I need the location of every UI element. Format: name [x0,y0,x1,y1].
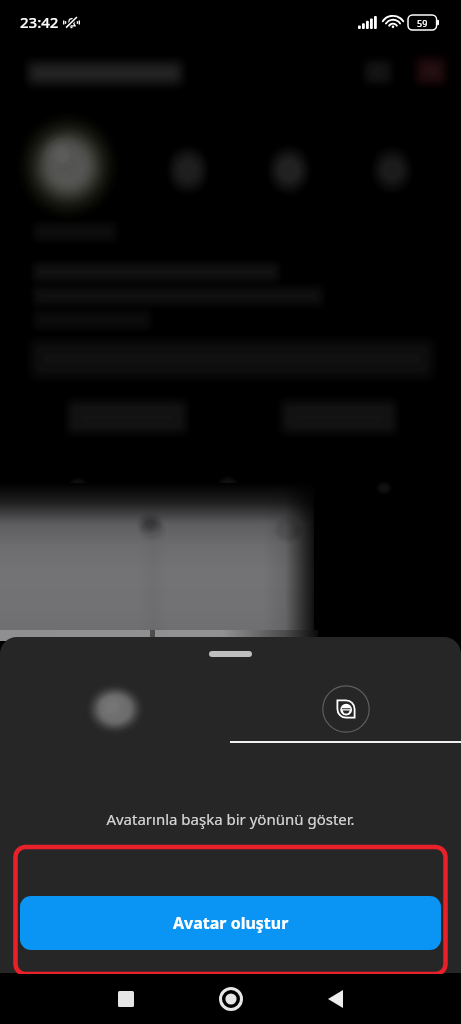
button[interactable]: Recent apps [73,975,178,1023]
staticText: Avatar oluştur [173,912,289,934]
staticText: 59 [417,17,428,29]
staticText: Avatarınla başka bir yönünü göster. [0,809,461,829]
button[interactable]: Home [178,975,283,1023]
button[interactable]: Avatar oluştur [20,896,441,950]
staticText: 23:42 [20,12,59,32]
button[interactable]: Photo tab [0,675,230,743]
button[interactable]: Avatar tab [230,675,461,743]
button[interactable]: Back [283,975,388,1023]
